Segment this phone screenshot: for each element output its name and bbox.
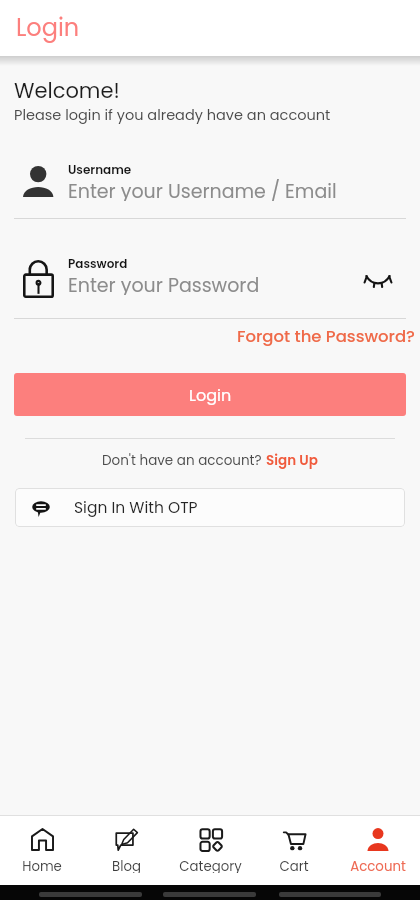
staticText: Username xyxy=(68,161,132,178)
staticText: Please login if you already have an acco… xyxy=(14,105,331,125)
button[interactable]: Category xyxy=(168,816,252,885)
staticText: Login xyxy=(16,11,80,45)
button[interactable]: Blog xyxy=(84,816,168,885)
button[interactable]: Home xyxy=(0,816,84,885)
staticText: Enter your Password xyxy=(68,272,260,295)
button[interactable]: Cart xyxy=(252,816,336,885)
staticText: Home xyxy=(22,857,62,873)
staticText: Blog xyxy=(112,857,141,873)
staticText: Enter your Username / Email xyxy=(68,178,337,201)
staticText: Sign In With OTP xyxy=(74,497,198,519)
staticText: Cart xyxy=(279,857,309,873)
button[interactable]: Show password xyxy=(356,257,406,295)
staticText: Account xyxy=(350,857,406,873)
staticText: Welcome! xyxy=(14,76,120,105)
button[interactable]: Sign In With OTP xyxy=(15,488,405,527)
staticText: Don't have an account? xyxy=(102,451,266,470)
staticText: Password xyxy=(68,255,128,272)
button[interactable]: Sign Up xyxy=(266,451,318,470)
staticText: Category xyxy=(179,857,242,873)
staticText: Login xyxy=(189,384,232,406)
button[interactable]: Forgot the Password? xyxy=(237,325,415,348)
button[interactable]: Login xyxy=(14,373,406,416)
button[interactable]: Account xyxy=(336,816,420,885)
